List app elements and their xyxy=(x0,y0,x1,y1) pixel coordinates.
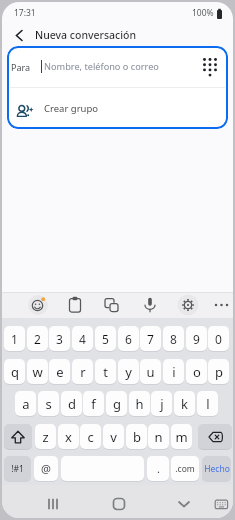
button[interactable]: 8 xyxy=(163,326,184,351)
staticText: 17:31 xyxy=(14,7,36,19)
button[interactable]: @ xyxy=(34,456,58,481)
staticText: 0 xyxy=(215,331,222,347)
staticText: z xyxy=(42,428,49,446)
button[interactable]: p xyxy=(208,359,229,384)
button[interactable]: 6 xyxy=(118,326,139,351)
staticText: m xyxy=(175,428,188,446)
staticText: @ xyxy=(41,461,51,476)
button[interactable]: b xyxy=(126,424,147,449)
button[interactable] xyxy=(139,294,161,316)
button[interactable]: 4 xyxy=(72,326,93,351)
staticText: r xyxy=(80,363,86,381)
button[interactable] xyxy=(61,456,144,481)
button[interactable]: 9 xyxy=(186,326,207,351)
button[interactable] xyxy=(174,494,194,514)
button[interactable]: 2 xyxy=(27,326,48,351)
button[interactable]: a xyxy=(15,391,36,416)
staticText: i xyxy=(172,363,176,381)
button[interactable] xyxy=(101,294,123,316)
button[interactable]: 3 xyxy=(49,326,70,351)
staticText: d xyxy=(68,395,76,413)
staticText: g xyxy=(113,395,121,413)
staticText: p xyxy=(215,363,223,381)
staticText: 9 xyxy=(193,331,200,347)
staticText: x xyxy=(65,428,72,446)
button[interactable] xyxy=(211,494,231,514)
staticText: f xyxy=(91,395,96,413)
staticText: a xyxy=(22,395,30,413)
staticText: n xyxy=(154,428,163,446)
button[interactable]: c xyxy=(80,424,101,449)
button[interactable]: 7 xyxy=(140,326,161,351)
staticText: 2 xyxy=(34,331,41,347)
button[interactable]: s xyxy=(38,391,59,416)
button[interactable] xyxy=(64,294,86,316)
button[interactable]: j xyxy=(151,391,172,416)
staticText: 5 xyxy=(102,331,109,347)
staticText: Nueva conversación xyxy=(35,28,137,42)
staticText: e xyxy=(56,363,64,381)
staticText: l xyxy=(206,395,210,413)
button[interactable]: m xyxy=(171,424,192,449)
button[interactable]: 5 xyxy=(95,326,116,351)
staticText: Crear grupo xyxy=(44,102,99,115)
button[interactable]: t xyxy=(95,359,116,384)
button[interactable]: d xyxy=(61,391,82,416)
button[interactable] xyxy=(177,294,199,316)
staticText: 6 xyxy=(125,331,132,347)
staticText: w xyxy=(32,363,43,381)
button[interactable] xyxy=(198,424,232,449)
staticText: Nombre, teléfono o correo xyxy=(44,60,159,73)
button[interactable] xyxy=(211,294,233,316)
button[interactable]: !#1 xyxy=(4,456,31,481)
staticText: 3 xyxy=(56,331,63,347)
button[interactable]: h xyxy=(129,391,150,416)
button[interactable]: l xyxy=(197,391,218,416)
button[interactable]: v xyxy=(103,424,124,449)
staticText: j xyxy=(160,395,164,413)
button[interactable]: g xyxy=(106,391,127,416)
button[interactable]: 0 xyxy=(208,326,229,351)
staticText: Hecho xyxy=(204,463,230,475)
staticText: t xyxy=(103,363,108,381)
button[interactable]: r xyxy=(72,359,93,384)
staticText: q xyxy=(11,363,19,381)
button[interactable]: 1 xyxy=(4,326,25,351)
button[interactable]: z xyxy=(35,424,56,449)
staticText: .com xyxy=(175,463,195,475)
button[interactable]: n xyxy=(148,424,169,449)
button[interactable]: i xyxy=(163,359,184,384)
button[interactable] xyxy=(109,494,129,514)
button[interactable] xyxy=(27,294,49,316)
button[interactable]: u xyxy=(140,359,161,384)
staticText: o xyxy=(193,363,201,381)
button[interactable]: y xyxy=(118,359,139,384)
staticText: !#1 xyxy=(11,463,24,475)
staticText: k xyxy=(181,395,188,413)
staticText: 8 xyxy=(170,331,177,347)
button[interactable]: Crear grupo xyxy=(7,88,228,129)
button[interactable]: w xyxy=(27,359,48,384)
button[interactable]: Para xyxy=(7,46,228,87)
button[interactable] xyxy=(43,494,63,514)
staticText: h xyxy=(135,395,144,413)
button[interactable] xyxy=(11,27,27,43)
button[interactable]: o xyxy=(186,359,207,384)
staticText: u xyxy=(146,363,155,381)
button[interactable]: q xyxy=(4,359,25,384)
button[interactable]: . xyxy=(147,456,169,481)
staticText: . xyxy=(157,461,160,476)
button[interactable]: e xyxy=(49,359,70,384)
staticText: Para xyxy=(11,61,31,73)
button[interactable]: .com xyxy=(171,456,199,481)
button[interactable] xyxy=(4,424,32,449)
button[interactable]: Hecho xyxy=(202,456,231,481)
staticText: y xyxy=(125,363,132,381)
staticText: 1 xyxy=(11,331,18,347)
button[interactable]: x xyxy=(58,424,79,449)
staticText: 4 xyxy=(79,331,86,347)
button[interactable]: k xyxy=(174,391,195,416)
button[interactable]: f xyxy=(83,391,104,416)
staticText: c xyxy=(87,428,94,446)
staticText: 100% xyxy=(192,7,214,19)
